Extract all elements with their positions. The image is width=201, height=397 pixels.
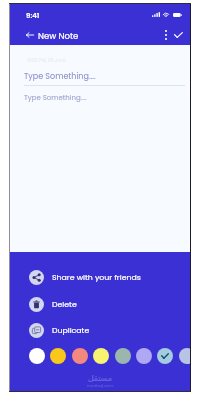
button[interactable]: Duplicate xyxy=(10,319,190,341)
button[interactable]: Colour 3 xyxy=(72,348,88,364)
button[interactable]: More options xyxy=(158,25,174,44)
button[interactable]: Colour 4 xyxy=(93,348,109,364)
staticText: مستقل xyxy=(10,374,190,383)
button[interactable]: Save note xyxy=(170,25,187,44)
button[interactable]: Delete xyxy=(10,293,190,315)
staticText: Type Something.... xyxy=(24,93,87,103)
button[interactable]: Share xyxy=(10,266,190,288)
button[interactable]: Colour 1 xyxy=(29,348,45,364)
staticText: Delete xyxy=(52,299,77,310)
button[interactable]: Back xyxy=(22,25,38,44)
button[interactable]: Colour 6 xyxy=(136,348,152,364)
staticText: 10:00 PM, 08 June xyxy=(27,57,66,63)
staticText: mostaql.com xyxy=(10,383,190,389)
staticText: Type Something.... xyxy=(24,71,96,82)
staticText: Share with your friends xyxy=(52,272,141,283)
staticText: 9:41 xyxy=(26,11,40,21)
button[interactable]: Colour 8 xyxy=(179,348,190,364)
button[interactable]: Colour 2 xyxy=(50,348,66,364)
staticText: New Note xyxy=(38,30,79,42)
button[interactable]: Colour 7 xyxy=(157,348,173,364)
button[interactable]: Colour 5 xyxy=(115,348,131,364)
staticText: Duplicate xyxy=(52,325,90,336)
